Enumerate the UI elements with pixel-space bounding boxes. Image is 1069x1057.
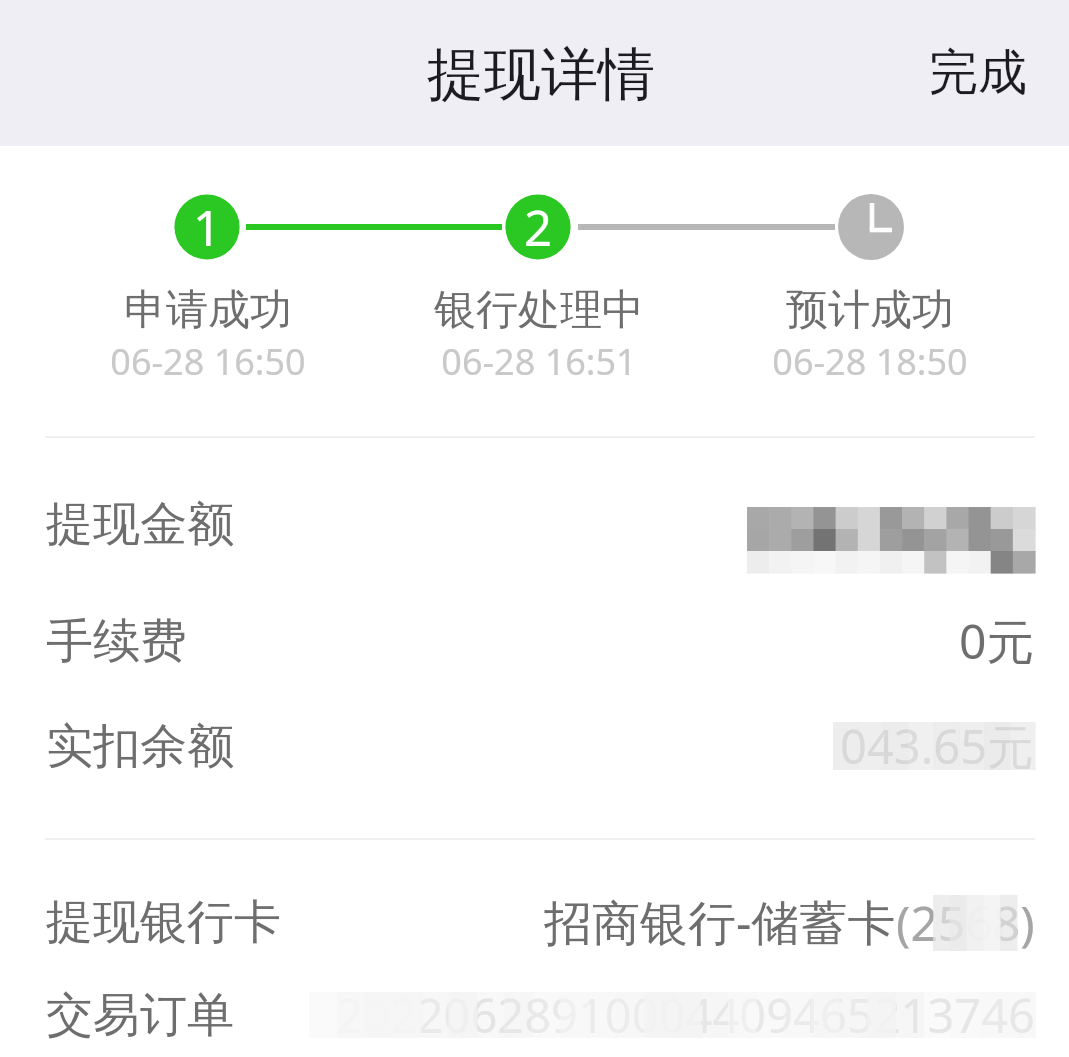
staticText: 06-28 18:50	[772, 337, 968, 386]
staticText: (2568)	[896, 890, 1035, 955]
staticText: 提现银行卡	[46, 893, 281, 952]
staticText: 1	[193, 194, 222, 258]
staticText: 043.65元	[840, 714, 1035, 778]
staticText: 招商银行-储蓄卡	[544, 889, 896, 955]
button[interactable]: 银行处理中	[373, 284, 704, 386]
staticText: 银行处理中	[434, 284, 644, 337]
staticText: 0元	[959, 608, 1035, 674]
button[interactable]: 交易订单	[0, 969, 1069, 1057]
button[interactable]: 提现金额	[0, 467, 1069, 582]
button[interactable]: 提现银行卡	[0, 876, 1069, 968]
button[interactable]: 实扣余额	[0, 694, 1069, 798]
staticText: 06-28 16:50	[110, 337, 306, 386]
button[interactable]: 申请成功	[42, 284, 373, 386]
staticText: 手续费	[46, 612, 187, 671]
staticText: 交易订单	[46, 986, 234, 1045]
staticText: 20220628910004409465213746	[336, 983, 1035, 1047]
staticText: 预计成功	[786, 284, 954, 337]
staticText: 06-28 16:51	[441, 337, 637, 386]
staticText: 申请成功	[124, 284, 292, 337]
staticText: 2	[524, 194, 553, 258]
staticText: 提现详情	[427, 39, 655, 111]
button[interactable]: 完成	[889, 18, 1069, 128]
button[interactable]: 预计成功	[704, 284, 1035, 386]
button[interactable]: 手续费	[0, 589, 1069, 693]
staticText: 提现金额	[46, 495, 234, 554]
staticText: 实扣余额	[46, 717, 234, 776]
staticText: 完成	[929, 42, 1027, 104]
